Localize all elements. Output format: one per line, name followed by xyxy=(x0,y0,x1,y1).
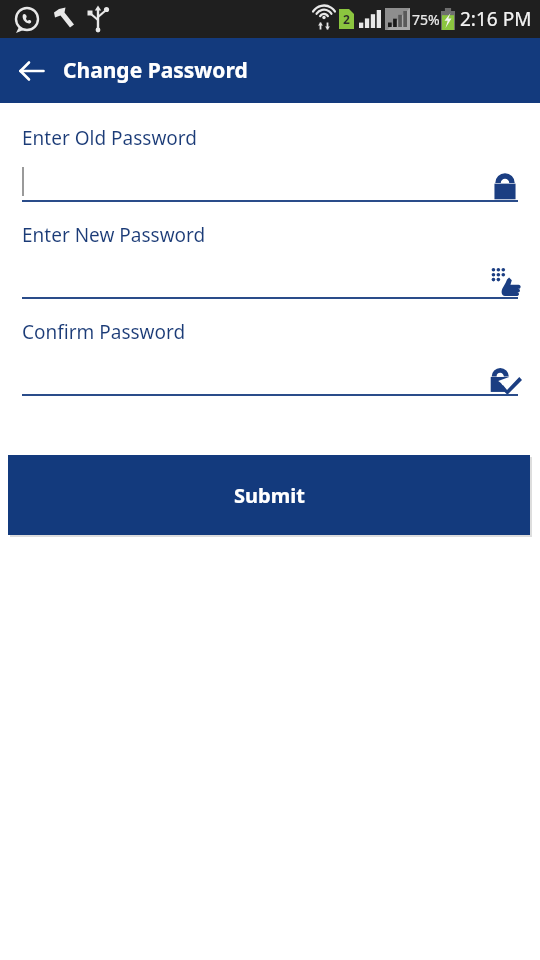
staticText: Enter Old Password xyxy=(22,125,197,151)
staticText: Enter New Password xyxy=(22,222,206,248)
staticText: 75% xyxy=(412,10,440,29)
button[interactable] xyxy=(0,358,540,396)
staticText: 2 xyxy=(343,11,350,27)
staticText: 2:16 PM xyxy=(460,6,532,32)
button[interactable] xyxy=(0,164,540,202)
staticText: Confirm Password xyxy=(22,319,186,345)
staticText: Change Password xyxy=(63,56,248,85)
button[interactable]: Back xyxy=(10,49,54,93)
button[interactable]: Submit xyxy=(8,455,530,535)
staticText: Submit xyxy=(234,482,305,509)
button[interactable] xyxy=(0,261,540,299)
